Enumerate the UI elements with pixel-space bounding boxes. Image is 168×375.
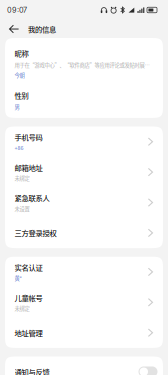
staticText: 我的信息 (28, 24, 56, 34)
staticText: 地址管理 (14, 327, 42, 338)
staticText: 儿童帐号 (14, 292, 42, 303)
button[interactable]: 手机号码 (5, 126, 163, 157)
button[interactable]: 地址管理 (5, 317, 163, 348)
staticText: +86 (14, 144, 23, 152)
staticText: 实名认证 (14, 262, 42, 273)
button[interactable]: 儿童帐号 (5, 287, 163, 317)
staticText: 三方登录授权 (14, 228, 56, 238)
staticText: 黄* (14, 274, 21, 282)
staticText: 通知与反馈 (14, 366, 49, 375)
button[interactable]: 紧急联系人 (5, 187, 163, 218)
staticText: 昵称 (14, 48, 28, 59)
staticText: 今朝 (14, 71, 24, 79)
staticText: 09:07 (7, 6, 27, 14)
button[interactable]: 三方登录授权 (5, 218, 163, 248)
button[interactable]: 返回 (7, 22, 21, 36)
button[interactable]: 通知与反馈 (5, 356, 163, 375)
button[interactable]: 昵称 (5, 38, 163, 90)
button[interactable]: 邮箱地址 (5, 157, 163, 187)
staticText: 手机号码 (14, 132, 42, 142)
staticText: 用于在“游戏中心”、“软件商店”等应用评论或发帖时展示。 (14, 61, 153, 69)
staticText: 紧急联系人 (14, 193, 49, 203)
staticText: 性别 (14, 90, 28, 101)
button[interactable]: 实名认证 (5, 257, 163, 287)
staticText: 邮箱地址 (14, 162, 42, 173)
staticText: 未绑定 (14, 304, 29, 312)
staticText: 未设置 (14, 205, 29, 212)
staticText: 男 (14, 103, 19, 111)
staticText: 未绑定 (14, 174, 29, 182)
button[interactable]: 性别 (5, 90, 163, 118)
